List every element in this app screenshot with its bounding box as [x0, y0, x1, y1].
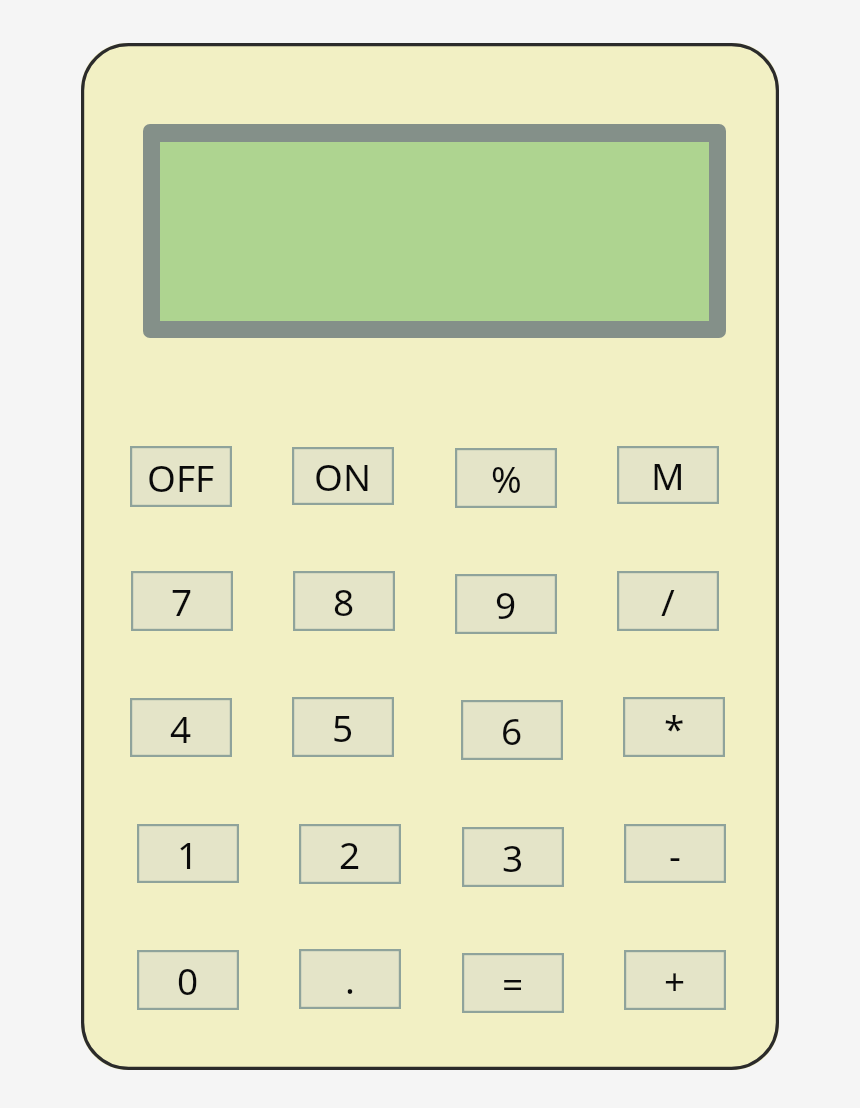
staticText: 5: [332, 702, 354, 752]
button[interactable]: .: [299, 949, 401, 1009]
staticText: +: [664, 955, 686, 1005]
button[interactable]: 0: [137, 950, 239, 1010]
staticText: =: [502, 958, 524, 1008]
button[interactable]: 5: [292, 697, 394, 757]
button[interactable]: *: [623, 697, 725, 757]
staticText: /: [661, 576, 675, 626]
button[interactable]: 7: [131, 571, 233, 631]
button[interactable]: OFF: [130, 446, 232, 507]
staticText: 8: [333, 576, 355, 626]
staticText: 0: [177, 955, 199, 1005]
staticText: 3: [502, 832, 524, 882]
staticText: 6: [501, 705, 523, 755]
staticText: 2: [339, 829, 361, 879]
button[interactable]: 4: [130, 698, 232, 757]
button[interactable]: =: [462, 953, 564, 1013]
staticText: 9: [495, 579, 517, 629]
button[interactable]: ON: [292, 447, 394, 505]
staticText: OFF: [147, 452, 215, 502]
staticText: 4: [170, 703, 192, 753]
button[interactable]: -: [624, 824, 726, 883]
button[interactable]: /: [617, 571, 719, 631]
staticText: 7: [171, 576, 193, 626]
staticText: 1: [177, 829, 199, 879]
button[interactable]: %: [455, 448, 557, 508]
button[interactable]: 2: [299, 824, 401, 884]
button[interactable]: 3: [462, 827, 564, 887]
staticText: -: [669, 829, 681, 879]
button[interactable]: 8: [293, 571, 395, 631]
button[interactable]: M: [617, 446, 719, 504]
staticText: %: [491, 453, 522, 503]
button[interactable]: 1: [137, 824, 239, 883]
button[interactable]: 9: [455, 574, 557, 634]
button[interactable]: +: [624, 950, 726, 1010]
staticText: ON: [314, 451, 372, 501]
staticText: M: [651, 450, 685, 500]
button[interactable]: 6: [461, 700, 563, 760]
staticText: *: [664, 702, 685, 752]
staticText: .: [345, 954, 355, 1004]
